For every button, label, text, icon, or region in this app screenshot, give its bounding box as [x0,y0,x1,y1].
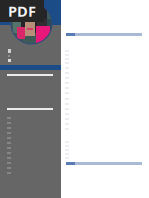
button[interactable]: PDF document [0,0,44,22]
staticText: PDF [8,1,36,21]
